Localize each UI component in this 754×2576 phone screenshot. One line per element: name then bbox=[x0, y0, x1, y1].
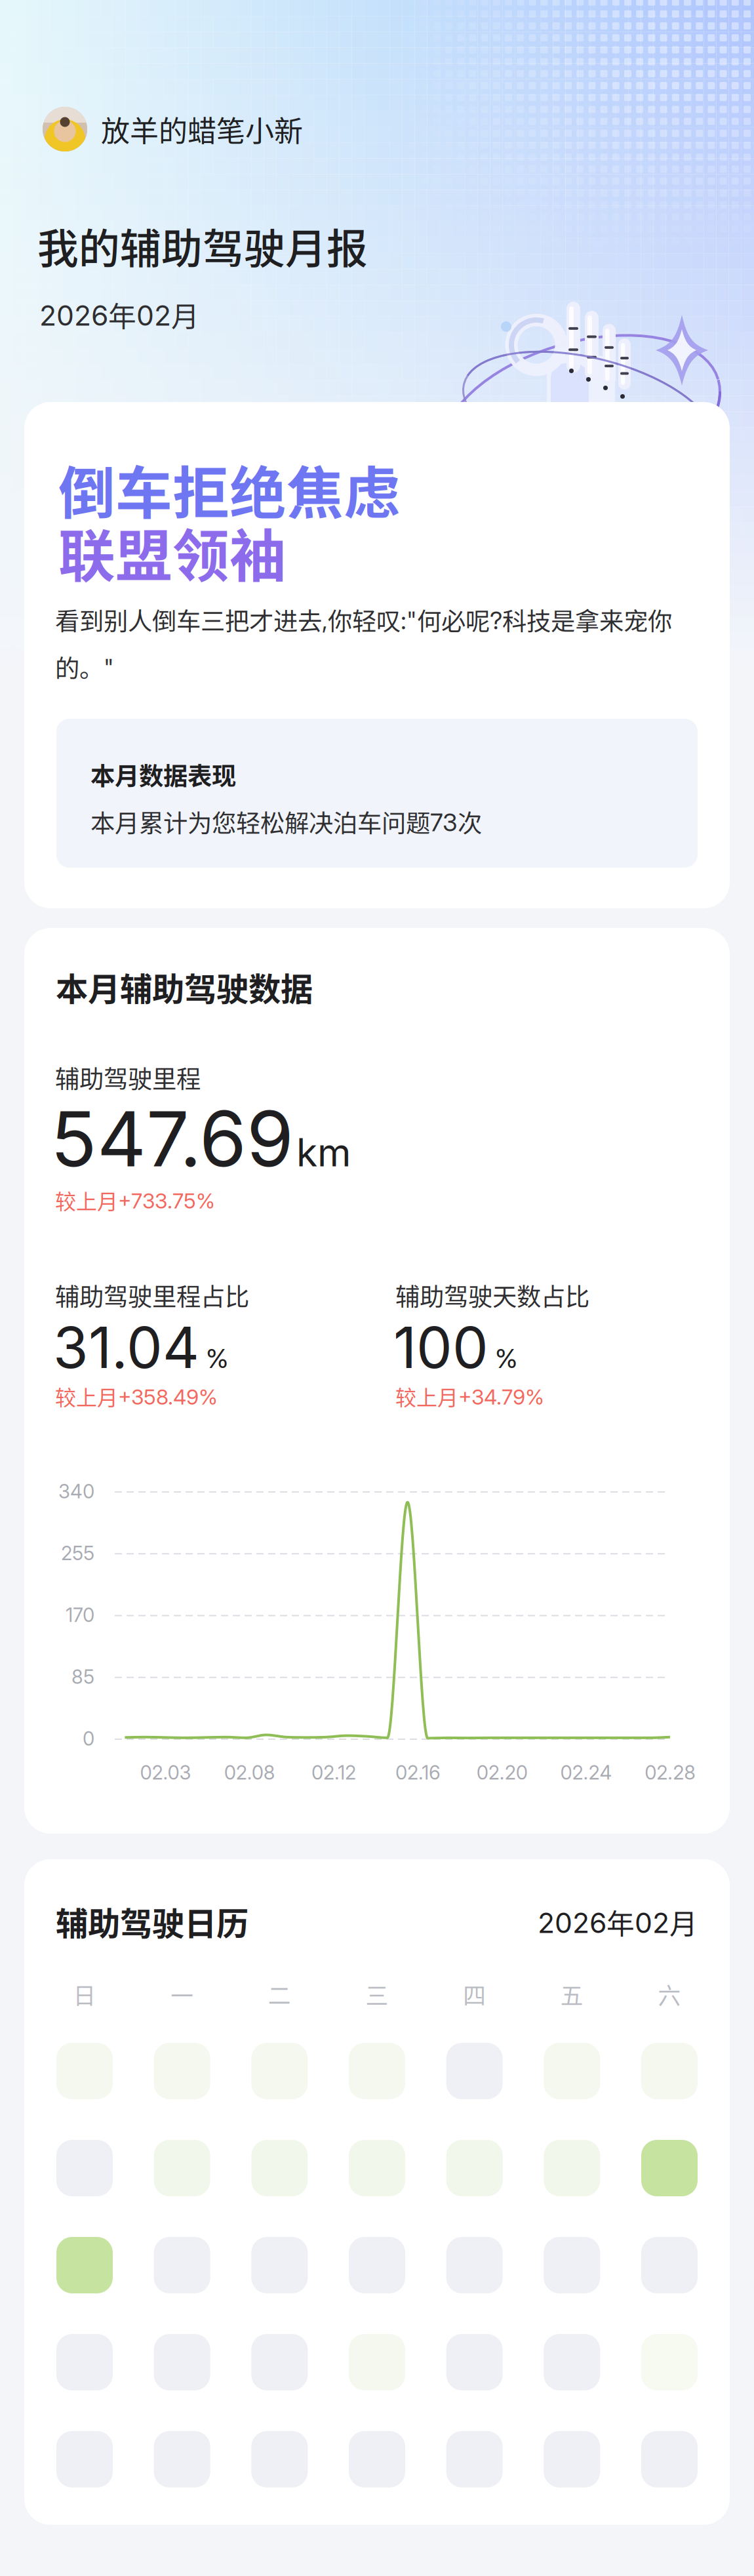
staticText: 547.69 bbox=[50, 1093, 294, 1185]
staticText: 2026年02月 bbox=[39, 294, 199, 335]
staticText: % bbox=[495, 1343, 517, 1374]
staticText: 五 bbox=[560, 1978, 583, 2011]
staticText: 本月辅助驾驶数据 bbox=[56, 963, 313, 1010]
staticText: 六 bbox=[658, 1978, 681, 2011]
staticText: 2026年02月 bbox=[538, 1902, 698, 1942]
staticText: 02.16 bbox=[395, 1761, 441, 1784]
staticText: 辅助驾驶天数占比 bbox=[395, 1278, 589, 1313]
staticText: 辅助驾驶里程占比 bbox=[55, 1278, 249, 1313]
staticText: 85 bbox=[71, 1665, 94, 1688]
staticText: 我的辅助驾驶月报 bbox=[37, 216, 368, 275]
staticText: 联盟领袖 bbox=[58, 511, 287, 593]
staticText: 辅助驾驶日历 bbox=[56, 1898, 248, 1945]
staticText: 02.20 bbox=[476, 1761, 528, 1784]
staticText: 170 bbox=[66, 1603, 94, 1627]
staticText: 辅助驾驶里程 bbox=[55, 1060, 201, 1095]
staticText: 较上月+34.79% bbox=[395, 1381, 544, 1411]
staticText: 02.12 bbox=[312, 1761, 356, 1784]
staticText: 二 bbox=[268, 1978, 291, 2011]
staticText: 本月数据表现 bbox=[90, 757, 236, 792]
staticText: 02.08 bbox=[224, 1761, 275, 1784]
button[interactable]: 放羊的蜡笔小新 bbox=[35, 99, 311, 159]
staticText: 较上月+358.49% bbox=[55, 1381, 218, 1411]
staticText: 0 bbox=[83, 1727, 94, 1750]
staticText: % bbox=[206, 1343, 228, 1374]
staticText: 340 bbox=[58, 1480, 94, 1503]
staticText: 较上月+733.75% bbox=[55, 1185, 215, 1215]
staticText: 一 bbox=[171, 1978, 194, 2011]
staticText: 100 bbox=[393, 1313, 488, 1382]
staticText: 日 bbox=[73, 1978, 96, 2011]
staticText: 02.28 bbox=[645, 1761, 696, 1784]
staticText: 三 bbox=[366, 1978, 388, 2011]
staticText: km bbox=[296, 1129, 351, 1176]
staticText: 255 bbox=[61, 1541, 94, 1565]
staticText: 倒车拒绝焦虑 bbox=[58, 448, 401, 530]
staticText: 放羊的蜡笔小新 bbox=[101, 108, 303, 150]
staticText: 31.04 bbox=[53, 1313, 199, 1382]
staticText: 02.03 bbox=[140, 1761, 191, 1784]
staticText: 看到别人倒车三把才进去,你轻叹:"何必呢?科技是拿来宠你的。" bbox=[55, 602, 672, 685]
staticText: 四 bbox=[463, 1978, 486, 2011]
staticText: 02.24 bbox=[560, 1761, 612, 1784]
staticText: 本月累计为您轻松解决泊车问题73次 bbox=[90, 804, 482, 839]
